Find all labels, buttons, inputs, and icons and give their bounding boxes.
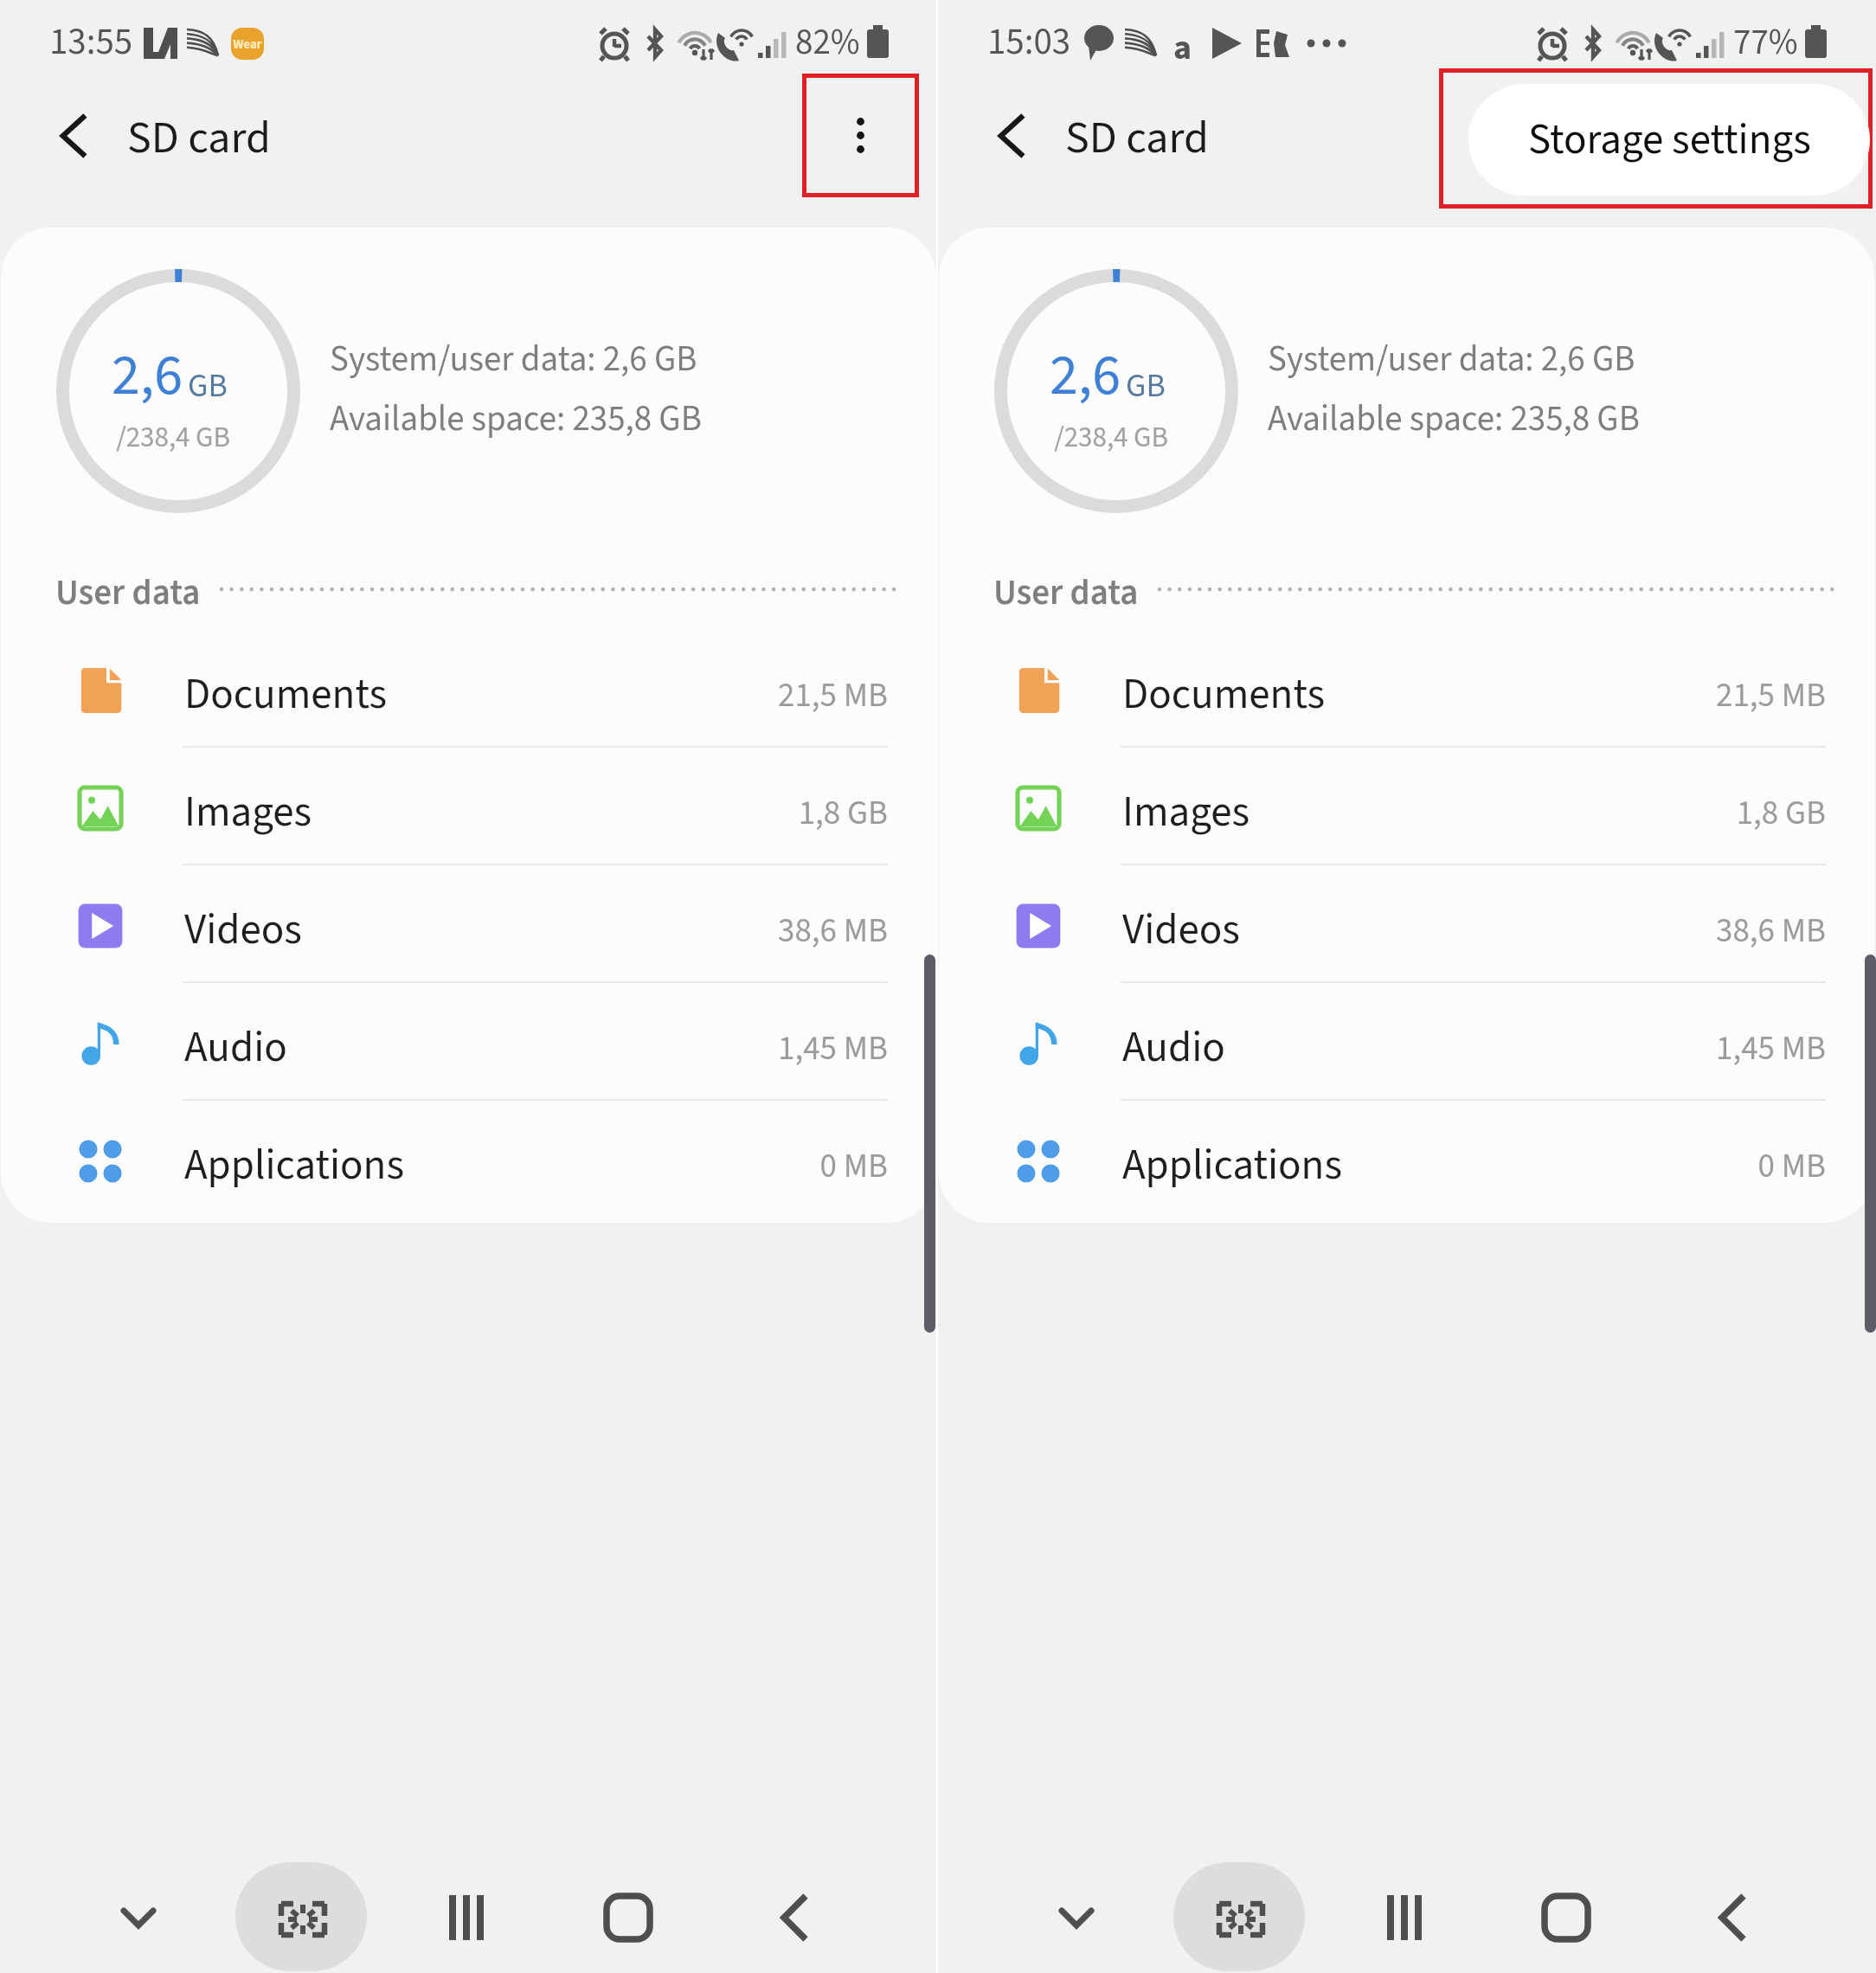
staticText: /238,4 GB (51, 417, 295, 458)
button[interactable]: Audio (939, 985, 1874, 1102)
button[interactable]: Videos (1, 867, 936, 985)
button[interactable]: Videos (939, 867, 1874, 985)
button[interactable]: Collapse (93, 1874, 180, 1961)
staticText: Images (1122, 782, 1250, 843)
staticText: Videos (1122, 900, 1240, 961)
button[interactable]: Images (939, 749, 1874, 867)
staticText: 15:03 (987, 16, 1071, 68)
staticText: 77% (1733, 17, 1798, 67)
staticText: 38,6 MB (939, 907, 1826, 955)
staticText: SD card (127, 106, 271, 170)
staticText: 2,6 (1050, 335, 1121, 416)
staticText: Wear (231, 35, 264, 54)
staticText: /238,4 GB (989, 417, 1233, 458)
button[interactable]: Home (589, 1874, 676, 1961)
button[interactable]: Audio (1, 985, 936, 1102)
button[interactable]: Storage settings (1468, 84, 1870, 196)
button[interactable]: Shrink window (1173, 1862, 1305, 1971)
button[interactable]: Collapse (1031, 1874, 1118, 1961)
staticText: Documents (1122, 665, 1326, 725)
staticText: 82% (795, 17, 860, 67)
staticText: Audio (184, 1018, 287, 1078)
staticText: Storage settings (1528, 110, 1811, 170)
staticText: Images (184, 782, 312, 843)
staticText: 1,8 GB (1, 789, 888, 838)
staticText: Available space: 235,8 GB (330, 394, 702, 444)
button[interactable]: Documents (1, 632, 936, 749)
staticText: System/user data: 2,6 GB (330, 334, 697, 384)
button[interactable]: Back (753, 1874, 839, 1961)
button[interactable]: Recent apps (1361, 1874, 1448, 1961)
staticText: 38,6 MB (1, 907, 888, 955)
staticText: Documents (184, 665, 388, 725)
staticText: 0 MB (939, 1142, 1826, 1191)
staticText: System/user data: 2,6 GB (1268, 334, 1635, 384)
staticText: User data (993, 568, 1139, 618)
staticText: 1,45 MB (939, 1025, 1826, 1073)
button[interactable]: Shrink window (235, 1862, 367, 1971)
button[interactable]: Applications (1, 1102, 936, 1220)
button[interactable]: Images (1, 749, 936, 867)
button[interactable]: More options (802, 74, 919, 197)
staticText: 13:55 (49, 16, 133, 68)
staticText: 2,6 (112, 335, 183, 416)
staticText: 21,5 MB (1, 672, 888, 720)
button[interactable]: Back (33, 95, 114, 177)
staticText: GB (188, 363, 228, 409)
button[interactable]: Back (971, 95, 1052, 177)
staticText: Available space: 235,8 GB (1268, 394, 1640, 444)
staticText: a (1173, 23, 1192, 73)
button[interactable]: Recent apps (423, 1874, 510, 1961)
staticText: Audio (1122, 1018, 1225, 1078)
staticText: 0 MB (1, 1142, 888, 1191)
staticText: GB (1126, 363, 1166, 409)
staticText: 1,8 GB (939, 789, 1826, 838)
staticText: SD card (1065, 106, 1209, 170)
staticText: 21,5 MB (939, 672, 1826, 720)
staticText: User data (55, 568, 201, 618)
staticText: 1,45 MB (1, 1025, 888, 1073)
staticText: Applications (184, 1135, 404, 1196)
button[interactable]: Back (1691, 1874, 1777, 1961)
staticText: Videos (184, 900, 302, 961)
button[interactable]: Applications (939, 1102, 1874, 1220)
button[interactable]: Home (1527, 1874, 1614, 1961)
button[interactable]: Documents (939, 632, 1874, 749)
staticText: Applications (1122, 1135, 1342, 1196)
